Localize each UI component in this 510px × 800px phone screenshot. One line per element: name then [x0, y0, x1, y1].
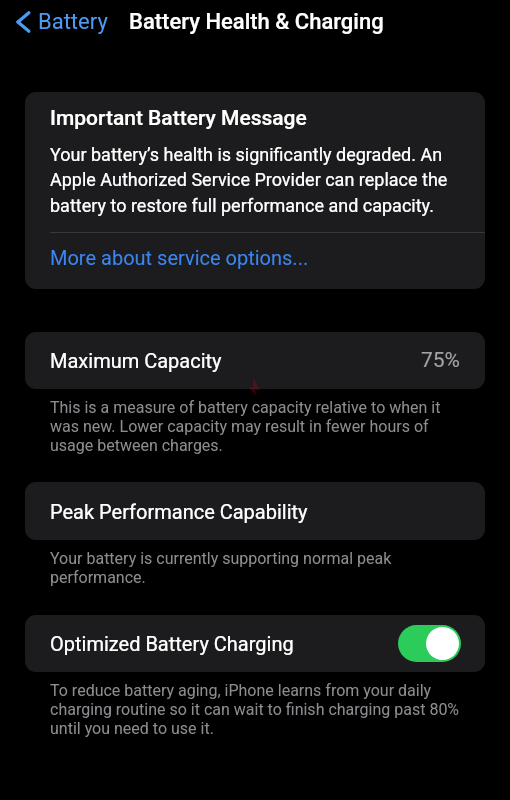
staticText: Battery	[38, 9, 108, 35]
button[interactable]: Important Battery Message	[25, 92, 485, 232]
staticText: 75%	[421, 348, 460, 373]
staticText: Your battery is currently supporting nor…	[50, 549, 462, 587]
button[interactable]: Optimized Battery Charging	[25, 615, 485, 672]
staticText: Your battery’s health is significantly d…	[50, 144, 463, 217]
button[interactable]: Battery	[0, 4, 114, 40]
staticText: Important Battery Message	[50, 106, 307, 131]
button[interactable]: Optimized Battery Charging toggle	[398, 625, 461, 662]
staticText: More about service options...	[50, 246, 309, 269]
staticText: Peak Performance Capability	[50, 500, 308, 523]
button[interactable]: More about service options...	[25, 233, 485, 289]
staticText: Optimized Battery Charging	[50, 632, 294, 655]
staticText: This is a measure of battery capacity re…	[50, 398, 462, 455]
button[interactable]: Peak Performance Capability	[25, 482, 485, 540]
staticText: To reduce battery aging, iPhone learns f…	[50, 681, 462, 738]
staticText: Battery Health & Charging	[129, 9, 384, 35]
staticText: Maximum Capacity	[50, 349, 222, 372]
button[interactable]: Maximum Capacity	[25, 332, 485, 389]
